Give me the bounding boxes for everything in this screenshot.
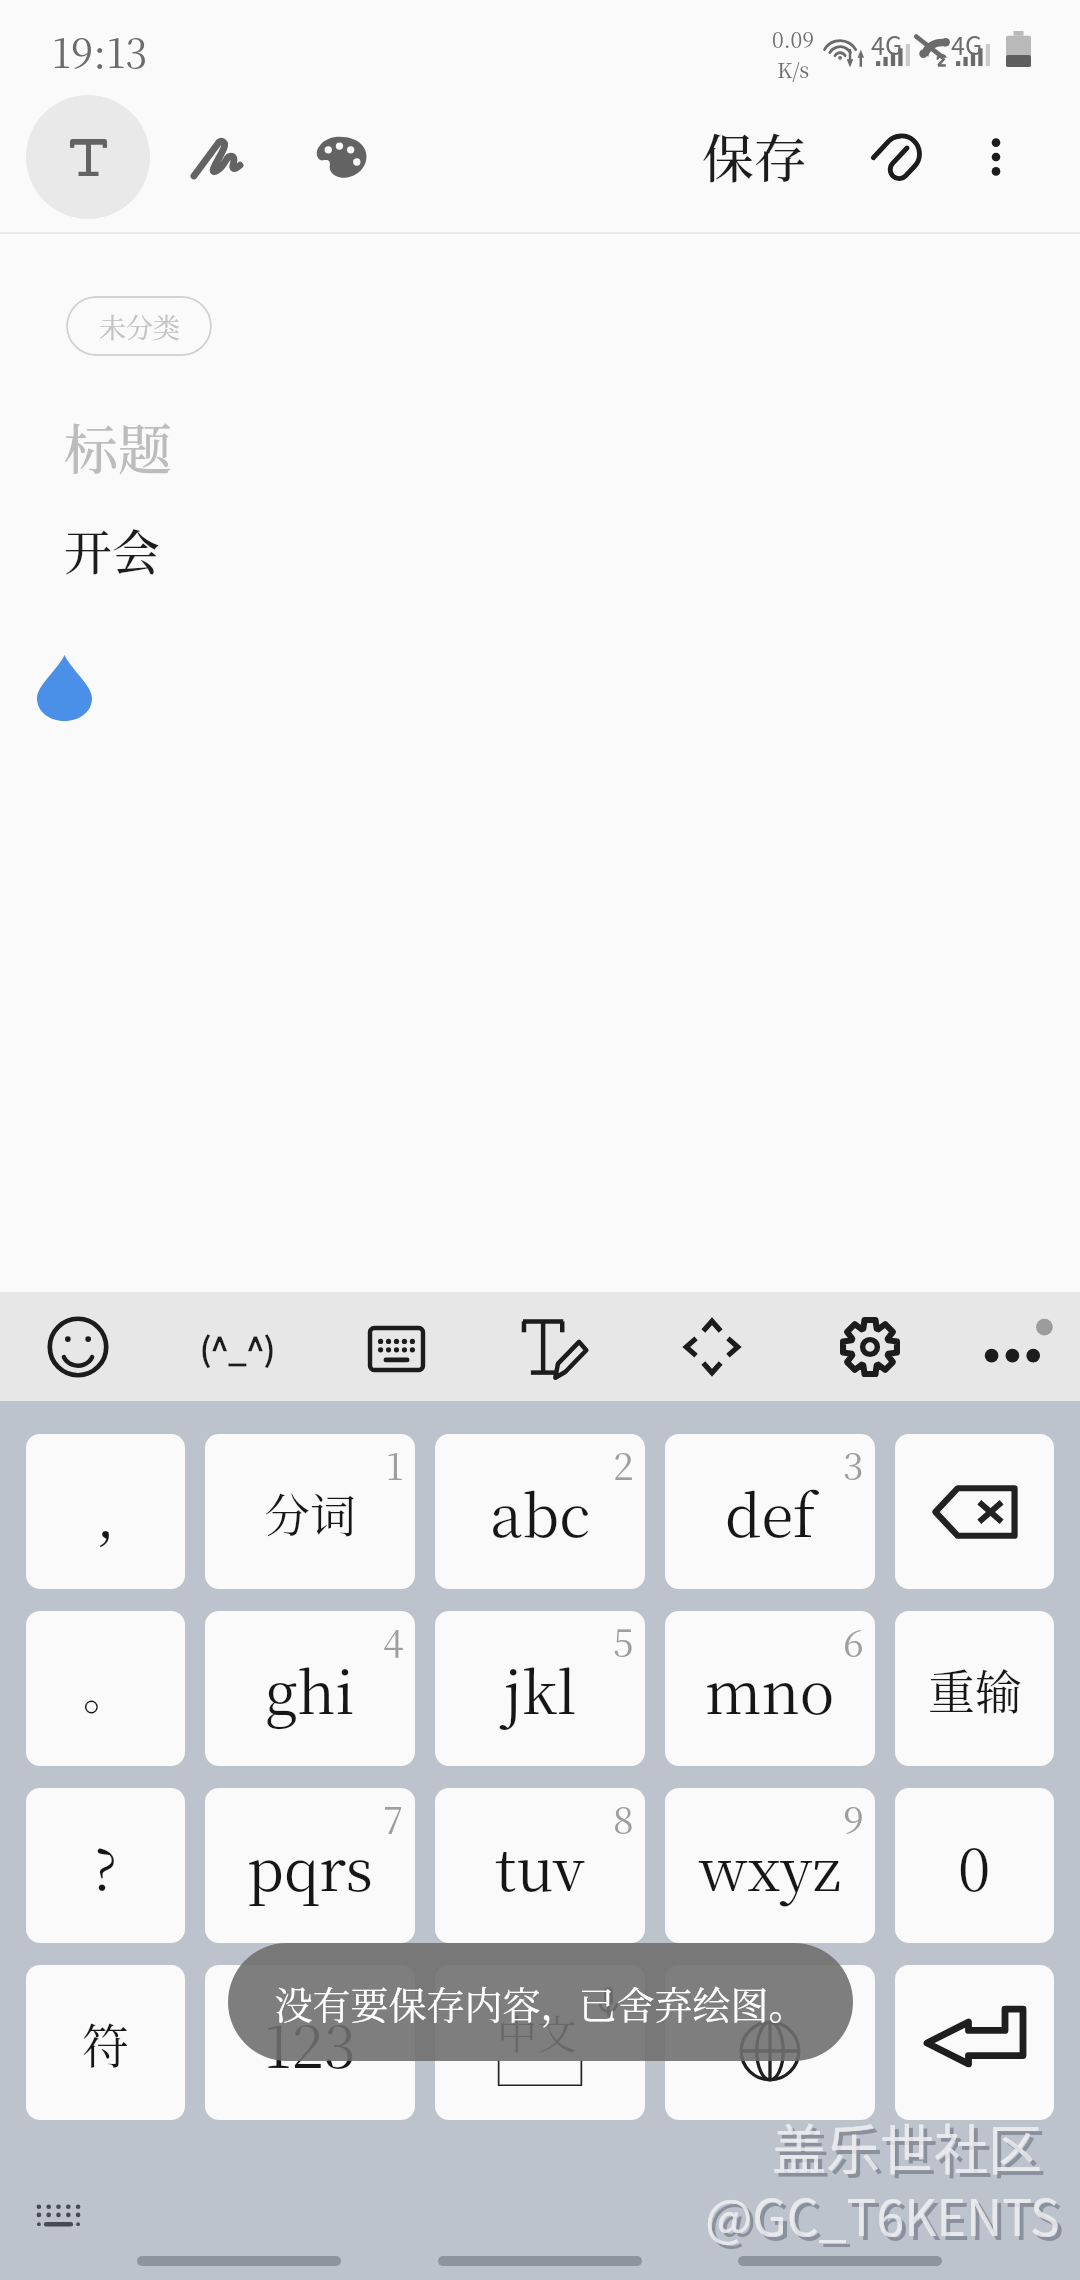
staticText: jkl [504, 1647, 577, 1730]
staticText: , [96, 1470, 115, 1553]
staticText: 4G [871, 26, 903, 62]
button[interactable]: More options [938, 1292, 1080, 1401]
staticText: def [725, 1470, 816, 1553]
button[interactable]: Settings [794, 1292, 946, 1401]
staticText: pqrs [247, 1824, 373, 1907]
staticText: 符 [82, 2009, 129, 2077]
staticText: 盖乐世社区 [772, 2107, 1042, 2185]
button[interactable]: 8 [435, 1788, 645, 1943]
button[interactable]: ? [26, 1788, 185, 1943]
staticText: 123 [264, 2001, 356, 2084]
staticText: 6 [843, 1614, 864, 1667]
staticText: ghi [265, 1647, 355, 1730]
button[interactable]: 123 [205, 1965, 415, 2120]
button[interactable]: 5 [435, 1611, 645, 1766]
staticText: @GC_T6KENTS [705, 2178, 1060, 2250]
button[interactable]: Keyboard layout [320, 1292, 472, 1401]
button[interactable]: Space [435, 1965, 645, 2120]
button[interactable]: Emoji [2, 1292, 154, 1401]
button[interactable]: 符 [26, 1965, 185, 2120]
button[interactable]: More options [951, 112, 1041, 202]
button[interactable]: 未分类 [66, 296, 212, 356]
staticText: 保存 [702, 118, 807, 193]
staticText: 9 [843, 1791, 864, 1844]
staticText: 7 [383, 1791, 404, 1844]
staticText: 4G [951, 26, 983, 62]
button[interactable]: 2 [435, 1434, 645, 1589]
staticText: 3 [843, 1437, 864, 1490]
staticText: 未分类 [99, 307, 180, 346]
button[interactable]: Text editing [478, 1292, 630, 1401]
button[interactable]: Move cursor [636, 1292, 788, 1401]
staticText: 19:13 [52, 22, 148, 79]
button[interactable]: 6 [665, 1611, 875, 1766]
staticText: K/s [777, 54, 810, 84]
button[interactable]: Text mode [26, 95, 150, 219]
button[interactable]: 保存 [688, 106, 821, 205]
button[interactable]: 重输 [895, 1611, 1054, 1766]
staticText: (^_^) [200, 1324, 276, 1370]
staticText: 8 [613, 1791, 634, 1844]
staticText: 没有要保存内容，已舍弃绘图。 [274, 1975, 807, 2030]
button[interactable]: Attach file [848, 110, 938, 200]
button[interactable]: , [26, 1434, 185, 1589]
button[interactable]: Enter [895, 1965, 1054, 2120]
staticText: 。 [83, 1656, 129, 1722]
staticText: 标题 [64, 408, 172, 486]
button[interactable]: 3 [665, 1434, 875, 1589]
staticText: 0 [958, 1824, 991, 1907]
staticText: 中文 [497, 2003, 577, 2060]
button[interactable]: 。 [26, 1611, 185, 1766]
button[interactable]: Emoticons [162, 1292, 314, 1401]
button[interactable]: 9 [665, 1788, 875, 1943]
button[interactable]: Backspace [895, 1434, 1054, 1589]
staticText: 重输 [928, 1655, 1022, 1723]
staticText: 盖乐世社区 [776, 2111, 1046, 2189]
staticText: 2 [613, 1437, 634, 1490]
staticText: 分词 [264, 1479, 356, 1545]
button[interactable]: Handwriting [170, 112, 260, 202]
staticText: @GC_T6KENTS [709, 2182, 1064, 2254]
button[interactable]: Drawing colours [296, 112, 386, 202]
staticText: abc [490, 1470, 591, 1553]
staticText: 5 [613, 1614, 634, 1667]
button[interactable]: 1 [205, 1434, 415, 1589]
staticText: mno [705, 1647, 835, 1730]
staticText: ? [93, 1826, 118, 1906]
button[interactable]: Switch language [665, 1965, 875, 2120]
staticText: 开会 [64, 515, 161, 584]
button[interactable]: 4 [205, 1611, 415, 1766]
staticText: 0.09 [772, 24, 815, 54]
button[interactable]: 7 [205, 1788, 415, 1943]
button[interactable]: 0 [895, 1788, 1054, 1943]
staticText: 4 [383, 1614, 404, 1667]
staticText: wxyz [699, 1824, 842, 1907]
staticText: 1 [386, 1437, 404, 1490]
staticText: tuv [495, 1824, 585, 1907]
